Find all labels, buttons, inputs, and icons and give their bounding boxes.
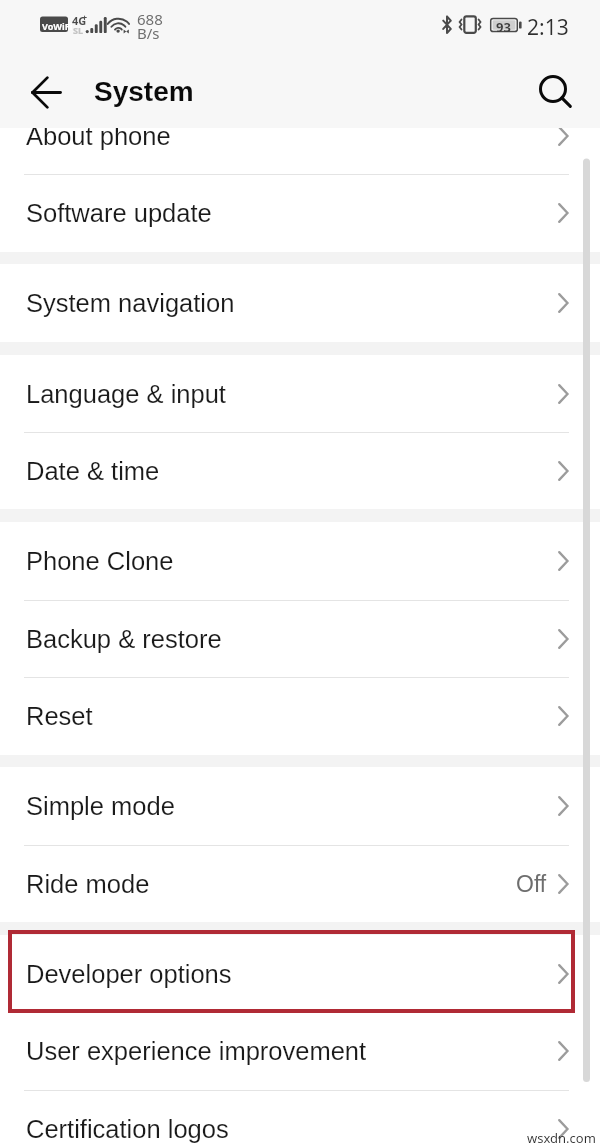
staticText: 688 (137, 9, 163, 29)
staticText: User experience improvement (26, 1037, 558, 1065)
button[interactable]: Ride mode (0, 845, 600, 922)
button[interactable]: Phone Clone (0, 522, 600, 599)
staticText: wsxdn.com (527, 1129, 596, 1147)
staticText: Developer options (26, 960, 558, 988)
staticText: 93 (496, 18, 511, 36)
button[interactable]: Software update (0, 174, 600, 251)
staticText: Ride mode (26, 870, 516, 898)
staticText: Simple mode (26, 792, 558, 820)
staticText: B/s (137, 23, 160, 43)
staticText: Certification logos (26, 1115, 558, 1143)
staticText: System navigation (26, 289, 558, 317)
button[interactable]: Simple mode (0, 767, 600, 844)
button[interactable]: Reset (0, 677, 600, 754)
button[interactable]: System navigation (0, 264, 600, 341)
button[interactable]: Back (24, 70, 68, 114)
staticText: + (82, 11, 88, 23)
staticText: 2:13 (527, 13, 569, 42)
staticText: 4G (72, 13, 87, 28)
staticText: SL (73, 24, 83, 36)
button[interactable]: Certification logos (0, 1090, 600, 1147)
staticText: Backup & restore (26, 625, 558, 653)
staticText: Phone Clone (26, 547, 558, 575)
staticText: Software update (26, 199, 558, 227)
button[interactable]: Language & input (0, 355, 600, 432)
staticText: Date & time (26, 457, 558, 485)
button[interactable]: About phone (0, 97, 600, 174)
staticText: System (94, 76, 194, 107)
staticText: VoWiFi (42, 20, 73, 32)
staticText: About phone (26, 122, 558, 150)
staticText: Off (516, 871, 547, 897)
button[interactable]: Developer options (0, 935, 600, 1012)
button[interactable]: Date & time (0, 432, 600, 509)
button[interactable]: Backup & restore (0, 600, 600, 677)
button[interactable]: User experience improvement (0, 1012, 600, 1089)
staticText: Reset (26, 702, 558, 730)
staticText: Language & input (26, 380, 558, 408)
button[interactable]: Search (534, 70, 578, 114)
